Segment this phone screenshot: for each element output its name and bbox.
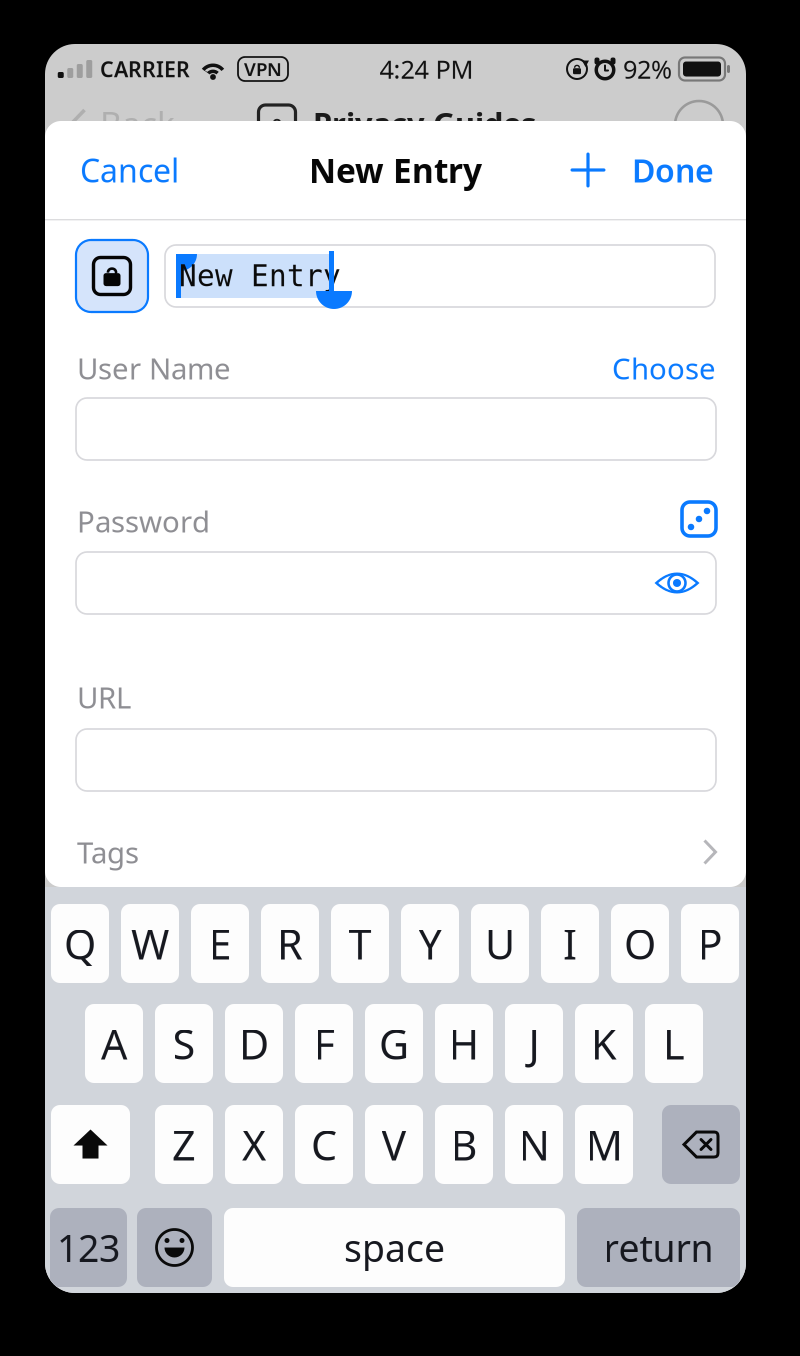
staticText: E bbox=[208, 916, 231, 971]
button[interactable]: C bbox=[295, 1105, 353, 1184]
staticText: URL bbox=[77, 677, 131, 716]
staticText: Cancel bbox=[80, 149, 179, 191]
button[interactable]: J bbox=[505, 1004, 563, 1083]
button[interactable]: Tags bbox=[45, 821, 746, 883]
button[interactable]: I bbox=[541, 904, 599, 983]
button[interactable]: Emoji keyboard bbox=[137, 1208, 212, 1287]
button[interactable]: Choose bbox=[612, 340, 716, 395]
staticText: Y bbox=[418, 916, 441, 971]
staticText: D bbox=[239, 1016, 269, 1071]
staticText: New Entry bbox=[179, 259, 341, 293]
staticText: M bbox=[585, 1117, 622, 1172]
staticText: K bbox=[591, 1016, 617, 1071]
staticText: S bbox=[172, 1016, 195, 1071]
button[interactable]: space bbox=[224, 1208, 565, 1287]
staticText: return bbox=[603, 1223, 713, 1272]
button[interactable]: Generate password bbox=[680, 500, 718, 538]
staticText: CARRIER bbox=[100, 55, 190, 83]
button[interactable]: L bbox=[645, 1004, 703, 1083]
staticText: W bbox=[131, 916, 169, 971]
staticText: I bbox=[563, 916, 577, 971]
staticText: X bbox=[242, 1117, 266, 1172]
button[interactable]: X bbox=[225, 1105, 283, 1184]
staticText: R bbox=[277, 916, 303, 971]
staticText: Q bbox=[64, 916, 96, 971]
button[interactable]: N bbox=[505, 1105, 563, 1184]
button[interactable]: U bbox=[471, 904, 529, 983]
staticText: O bbox=[624, 916, 656, 971]
staticText: B bbox=[450, 1117, 477, 1172]
staticText: User Name bbox=[77, 348, 231, 387]
button[interactable]: O bbox=[611, 904, 669, 983]
button[interactable]: Backspace bbox=[662, 1105, 740, 1184]
button[interactable]: K bbox=[575, 1004, 633, 1083]
staticText: 92% bbox=[623, 52, 672, 86]
staticText: A bbox=[101, 1016, 127, 1071]
staticText: L bbox=[663, 1016, 685, 1071]
staticText: Back bbox=[100, 101, 175, 145]
staticText: Choose bbox=[612, 348, 716, 387]
button[interactable]: Show password bbox=[649, 564, 705, 602]
staticText: U bbox=[485, 916, 515, 971]
button[interactable]: Shift bbox=[51, 1105, 130, 1184]
staticText: G bbox=[379, 1016, 409, 1071]
button[interactable]: Add field bbox=[568, 150, 608, 190]
staticText: New Entry bbox=[309, 148, 482, 192]
button[interactable]: R bbox=[261, 904, 319, 983]
button[interactable]: B bbox=[435, 1105, 493, 1184]
staticText: C bbox=[311, 1117, 337, 1172]
button[interactable]: P bbox=[681, 904, 739, 983]
staticText: 4:24 PM bbox=[379, 52, 473, 86]
button[interactable]: H bbox=[435, 1004, 493, 1083]
button[interactable]: Entry type bbox=[76, 240, 148, 312]
staticText: Privacy Guides bbox=[313, 103, 536, 143]
button[interactable]: T bbox=[331, 904, 389, 983]
staticText: Done bbox=[632, 149, 714, 191]
staticText: Z bbox=[172, 1117, 196, 1172]
button[interactable]: F bbox=[295, 1004, 353, 1083]
button[interactable]: V bbox=[365, 1105, 423, 1184]
staticText: Password bbox=[77, 501, 210, 540]
staticText: P bbox=[697, 916, 722, 971]
staticText: Tags bbox=[77, 832, 139, 871]
button[interactable]: Y bbox=[401, 904, 459, 983]
staticText: 123 bbox=[57, 1223, 120, 1272]
button[interactable]: Done bbox=[608, 135, 715, 205]
staticText: N bbox=[518, 1117, 549, 1172]
button[interactable]: Z bbox=[155, 1105, 213, 1184]
staticText: VPN bbox=[244, 57, 282, 81]
button[interactable]: E bbox=[191, 904, 249, 983]
staticText: H bbox=[448, 1016, 479, 1071]
staticText: J bbox=[528, 1016, 539, 1071]
staticText: T bbox=[348, 916, 371, 971]
button[interactable]: W bbox=[121, 904, 179, 983]
button[interactable]: A bbox=[85, 1004, 143, 1083]
button[interactable]: S bbox=[155, 1004, 213, 1083]
button[interactable]: G bbox=[365, 1004, 423, 1083]
button[interactable]: Cancel bbox=[76, 135, 183, 205]
staticText: V bbox=[381, 1117, 406, 1172]
staticText: F bbox=[313, 1016, 334, 1071]
staticText: space bbox=[344, 1223, 445, 1272]
button[interactable]: M bbox=[575, 1105, 633, 1184]
button[interactable]: return bbox=[577, 1208, 740, 1287]
button[interactable]: D bbox=[225, 1004, 283, 1083]
button[interactable]: Q bbox=[51, 904, 109, 983]
button[interactable]: 123 bbox=[50, 1208, 127, 1287]
